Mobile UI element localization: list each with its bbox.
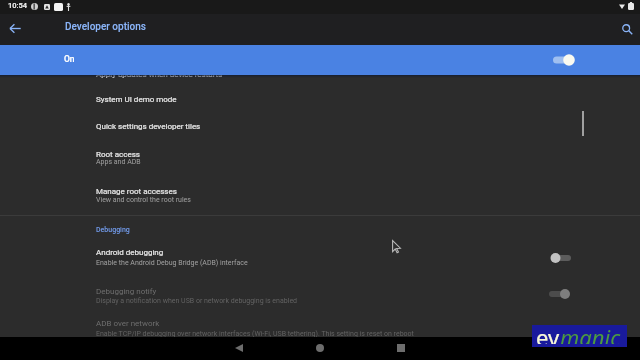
button[interactable]: Recent apps — [386, 337, 416, 360]
button[interactable]: ADB over network — [0, 311, 640, 337]
staticText: Quick settings developer tiles — [96, 122, 201, 131]
staticText: 10:54 — [8, 1, 28, 10]
button[interactable]: Toggle switch — [550, 250, 577, 266]
button[interactable]: Android debugging — [0, 240, 640, 277]
staticText: ev — [536, 322, 560, 344]
staticText: Display a notification when USB or netwo… — [96, 297, 298, 305]
staticText: View and control the root rules — [96, 196, 191, 204]
staticText: Enable TCP/IP debugging over network int… — [96, 330, 414, 337]
button[interactable]: Debugging notify — [0, 277, 640, 311]
staticText: Manage root accesses — [96, 187, 177, 196]
staticText: ADB over network — [96, 319, 160, 328]
button[interactable]: Root access — [0, 141, 640, 178]
button[interactable]: Toggle switch — [548, 52, 575, 68]
staticText: Enable the Android Debug Bridge (ADB) in… — [96, 259, 248, 267]
staticText: Debugging — [96, 226, 130, 234]
button[interactable]: Manage root accesses — [0, 178, 640, 215]
button[interactable]: System UI demo mode — [0, 87, 640, 114]
button[interactable]: Back — [224, 337, 254, 360]
staticText: Debugging notify — [96, 287, 157, 296]
button[interactable]: Home — [305, 337, 335, 360]
staticText: Android debugging — [96, 248, 164, 257]
staticText: Apps and ADB — [96, 158, 141, 166]
button[interactable]: Quick settings developer tiles — [0, 114, 640, 141]
staticText: On — [64, 54, 75, 64]
button[interactable]: Apply updates when device restarts — [0, 60, 640, 87]
staticText: manic — [560, 322, 621, 344]
button[interactable]: On — [0, 45, 640, 75]
staticText: Developer options — [65, 21, 146, 33]
button[interactable]: Search — [614, 14, 640, 45]
button[interactable]: Navigate up — [0, 14, 29, 45]
button[interactable]: Toggle switch — [544, 286, 571, 302]
staticText: Root access — [96, 150, 140, 159]
staticText: Apply updates when device restarts — [96, 70, 223, 79]
staticText: System UI demo mode — [96, 95, 177, 104]
